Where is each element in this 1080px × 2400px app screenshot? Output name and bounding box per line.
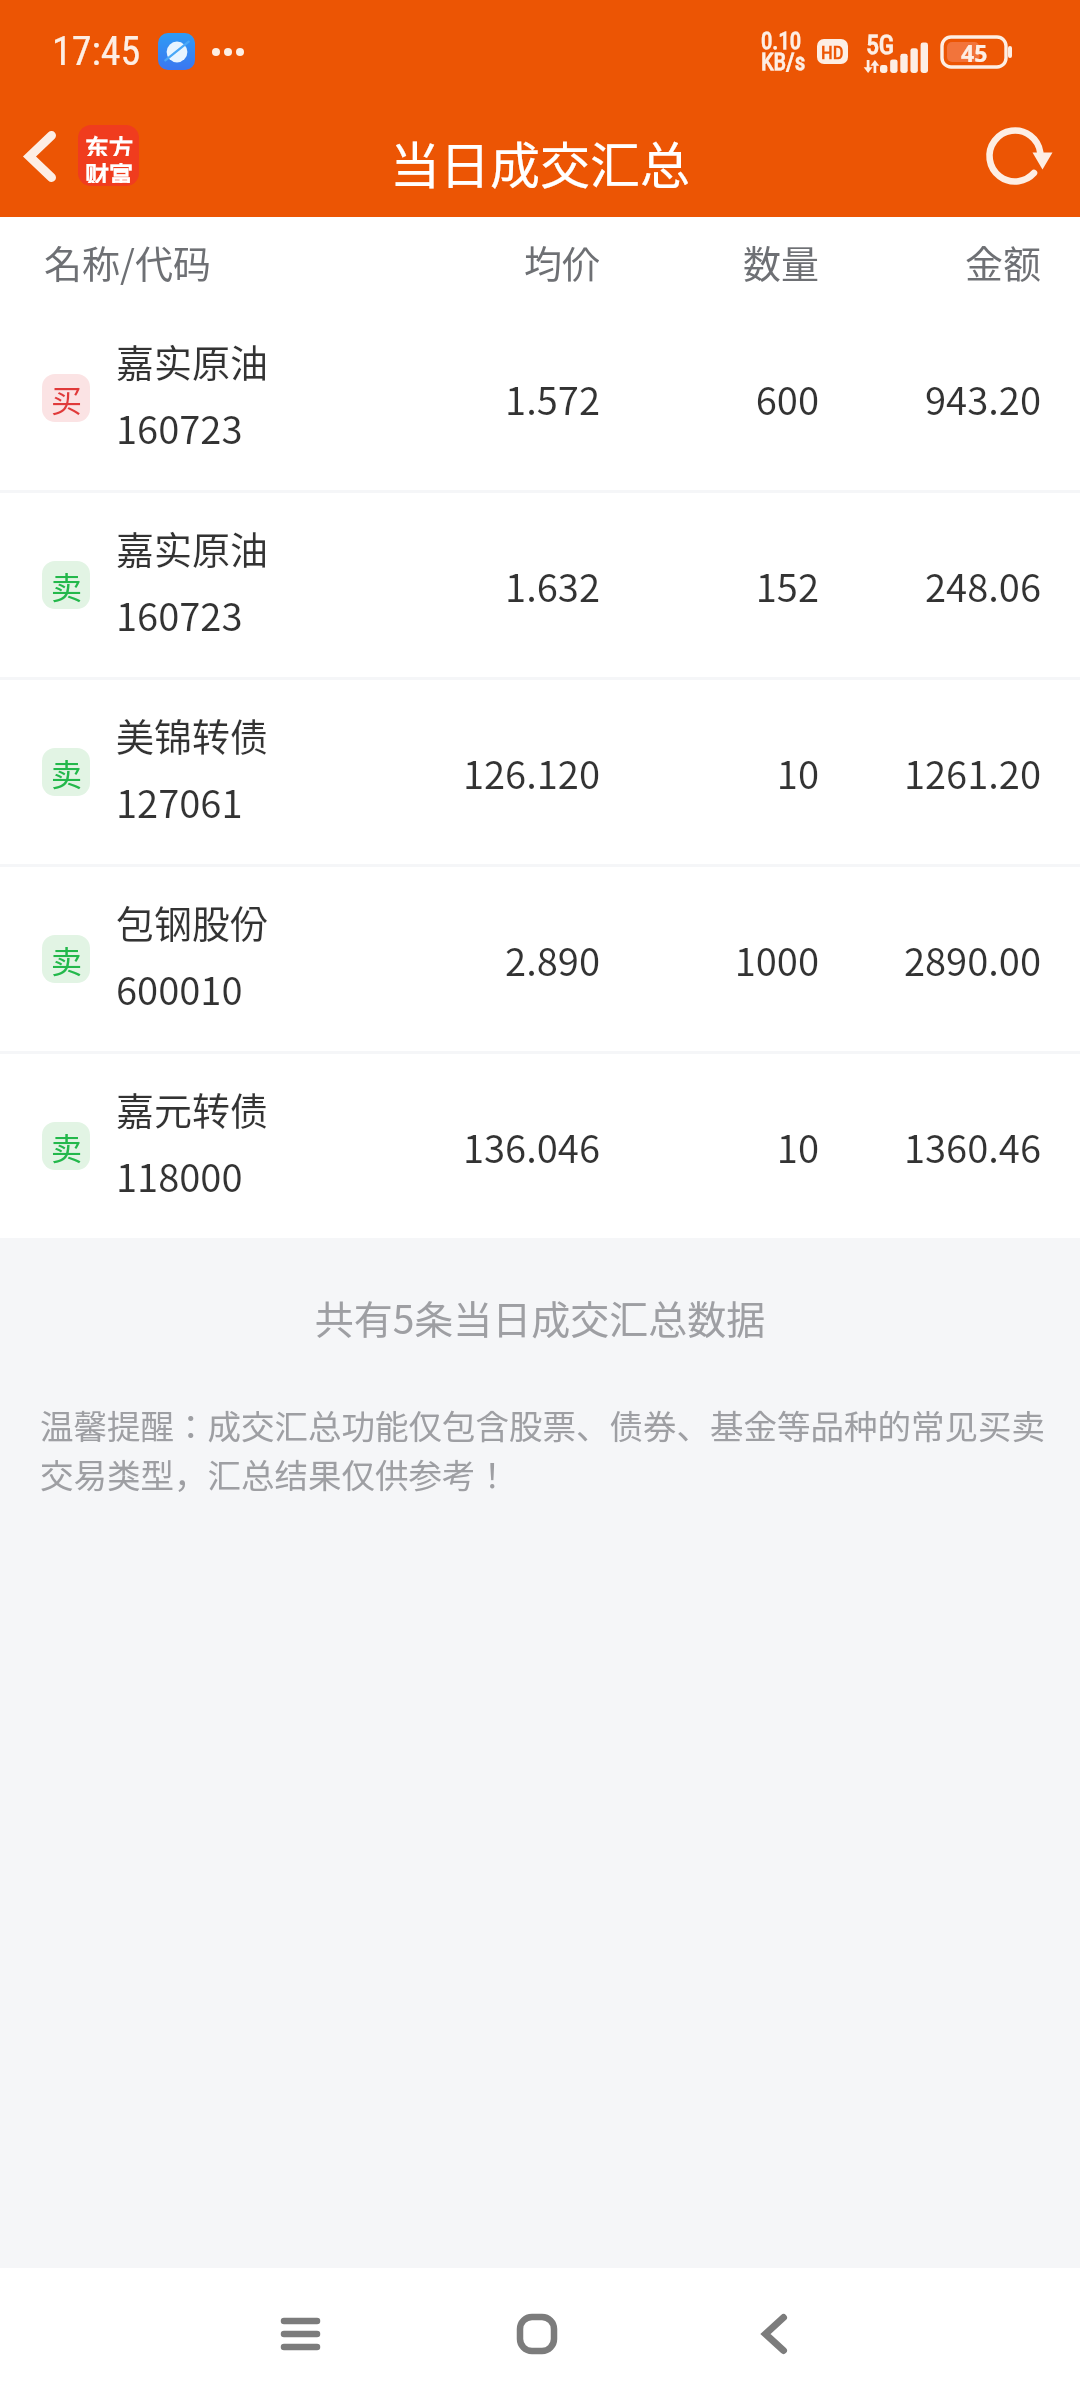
staticText: 1.632 (400, 558, 600, 613)
button[interactable]: 刷新 (975, 116, 1055, 196)
staticText: 118000 (116, 1148, 243, 1203)
staticText: 1000 (600, 932, 819, 987)
staticText: 名称/代码 (44, 234, 211, 289)
button[interactable]: 买 (0, 306, 1080, 490)
button[interactable]: 主屏幕 (471, 2268, 603, 2400)
staticText: 卖 (51, 1124, 82, 1169)
staticText: 127061 (116, 774, 243, 829)
staticText: 126.120 (400, 745, 600, 800)
staticText: 美锦转债 (116, 707, 269, 762)
staticText: 嘉元转债 (116, 1081, 269, 1136)
staticText: 45 (961, 37, 988, 67)
button[interactable]: 返回 (708, 2268, 840, 2400)
button[interactable]: 卖 (0, 1054, 1080, 1238)
staticText: 136.046 (400, 1119, 600, 1174)
staticText: 卖 (51, 750, 82, 795)
staticText: 包钢股份 (116, 894, 269, 949)
staticText: 160723 (116, 400, 243, 455)
staticText: 160723 (116, 587, 243, 642)
staticText: 金额 (819, 234, 1041, 289)
staticText: 152 (600, 558, 819, 613)
button[interactable]: 东方财富 (78, 125, 139, 186)
staticText: 财富 (85, 156, 133, 183)
staticText: 0.10 KB/s (761, 28, 806, 75)
staticText: 1360.46 (819, 1119, 1041, 1174)
staticText: 1.572 (400, 371, 600, 426)
staticText: 交易类型，汇总结果仅供参考！ (40, 1449, 1080, 1498)
button[interactable]: 卖 (0, 680, 1080, 864)
staticText: 嘉实原油 (116, 520, 269, 575)
staticText: 卖 (51, 563, 82, 608)
staticText: 17:45 (52, 28, 141, 75)
staticText: 均价 (400, 234, 600, 289)
staticText: 东方 (85, 129, 133, 156)
button[interactable]: 最近任务 (234, 2268, 366, 2400)
staticText: 248.06 (819, 558, 1041, 613)
staticText: 600 (600, 371, 819, 426)
staticText: 共有5条当日成交汇总数据 (0, 1289, 1080, 1345)
staticText: 10 (600, 1119, 819, 1174)
staticText: 10 (600, 745, 819, 800)
staticText: 温馨提醒：成交汇总功能仅包含股票、债券、基金等品种的常见买卖 (40, 1400, 1080, 1449)
staticText: 2.890 (400, 932, 600, 987)
button[interactable]: 返回 (0, 116, 80, 196)
staticText: 卖 (51, 937, 82, 982)
staticText: 当日成交汇总 (390, 126, 690, 198)
staticText: 数量 (600, 234, 819, 289)
staticText: 嘉实原油 (116, 333, 269, 388)
staticText: HD (821, 41, 844, 63)
button[interactable]: 卖 (0, 493, 1080, 677)
staticText: 600010 (116, 961, 243, 1016)
button[interactable]: 卖 (0, 867, 1080, 1051)
staticText: 5G (866, 30, 895, 60)
staticText: 1261.20 (819, 745, 1041, 800)
staticText: 2890.00 (819, 932, 1041, 987)
staticText: 943.20 (819, 371, 1041, 426)
staticText: 买 (51, 376, 82, 421)
